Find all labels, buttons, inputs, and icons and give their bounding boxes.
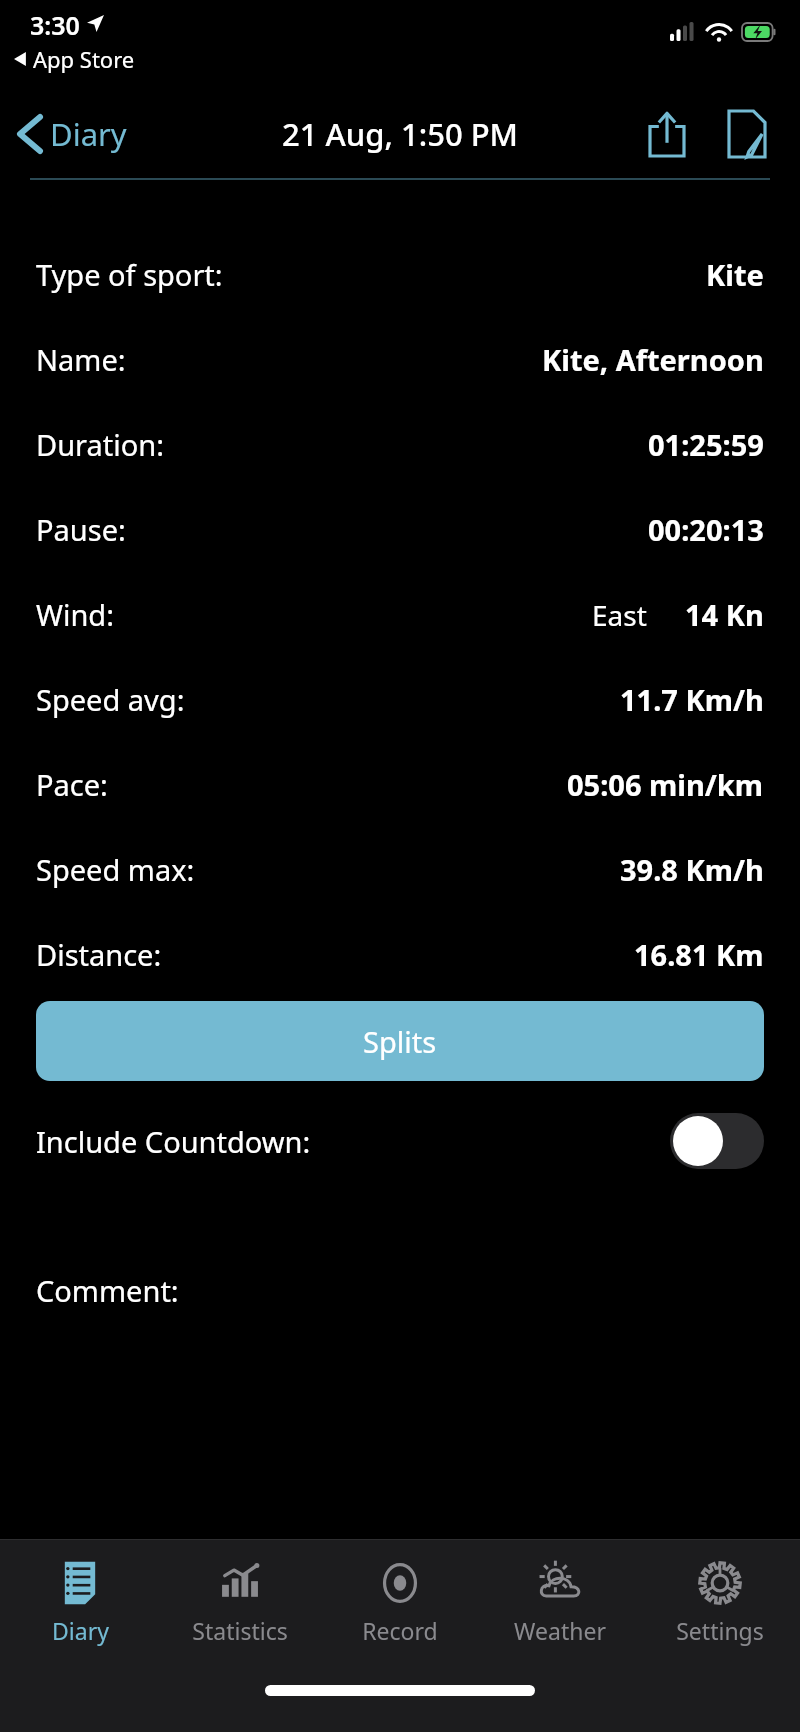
staticText: Settings <box>676 1615 764 1646</box>
staticText: Type of sport: <box>36 255 223 294</box>
button[interactable]: Name: <box>36 317 764 402</box>
staticText: 21 Aug, 1:50 PM <box>282 113 519 155</box>
staticText: 3:30 <box>30 8 80 42</box>
button[interactable]: Diary <box>12 107 135 161</box>
staticText: Weather <box>514 1615 606 1646</box>
staticText: Distance: <box>36 935 162 974</box>
staticText: Pace: <box>36 765 108 804</box>
staticText: Speed avg: <box>36 680 185 719</box>
button[interactable]: Pace: <box>36 742 764 827</box>
button[interactable]: Wind: <box>36 572 764 657</box>
button[interactable]: Record <box>320 1540 480 1665</box>
staticText: 39.8 Km/h <box>620 850 764 889</box>
button[interactable]: Distance: <box>36 912 764 997</box>
staticText: 14 Kn <box>685 595 764 634</box>
button[interactable]: Splits <box>36 1001 764 1081</box>
button[interactable]: Speed avg: <box>36 657 764 742</box>
staticText: Name: <box>36 340 126 379</box>
staticText: 05:06 min/km <box>567 765 764 804</box>
staticText: Kite <box>706 255 764 294</box>
staticText: East <box>592 596 647 634</box>
staticText: 01:25:59 <box>648 425 764 464</box>
staticText: Statistics <box>192 1615 288 1646</box>
button[interactable]: Speed max: <box>36 827 764 912</box>
staticText: Pause: <box>36 510 126 549</box>
button[interactable]: Weather <box>480 1540 640 1665</box>
button[interactable]: Pause: <box>36 487 764 572</box>
button[interactable]: Type of sport: <box>36 232 764 317</box>
staticText: Splits <box>363 1022 437 1061</box>
staticText: Record <box>362 1615 438 1646</box>
staticText: Speed max: <box>36 850 195 889</box>
button[interactable]: Include Countdown: <box>36 1081 764 1201</box>
button[interactable]: Duration: <box>36 402 764 487</box>
staticText: Kite, Afternoon <box>542 340 764 379</box>
staticText: Duration: <box>36 425 164 464</box>
staticText: 00:20:13 <box>648 510 764 549</box>
staticText: 11.7 Km/h <box>620 680 764 719</box>
staticText: Wind: <box>36 595 114 634</box>
button[interactable]: Share <box>634 101 700 167</box>
button[interactable]: Edit <box>714 101 780 167</box>
button[interactable]: Diary <box>0 1540 160 1665</box>
staticText: Comment: <box>36 1271 179 1310</box>
staticText: Diary <box>50 113 127 155</box>
staticText: App Store <box>33 44 135 74</box>
staticText: 16.81 Km <box>634 935 764 974</box>
staticText: Include Countdown: <box>36 1122 311 1161</box>
button[interactable]: Settings <box>640 1540 800 1665</box>
button[interactable]: Statistics <box>160 1540 320 1665</box>
staticText: Diary <box>52 1615 109 1646</box>
